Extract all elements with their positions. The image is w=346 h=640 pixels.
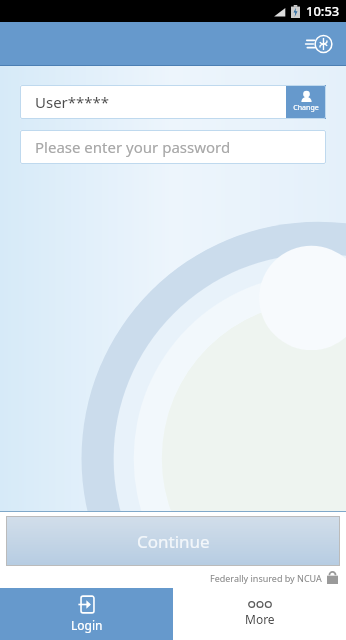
button[interactable]: Change	[286, 85, 326, 119]
staticText: 10:53	[306, 2, 340, 20]
staticText: Change	[293, 103, 319, 113]
button[interactable]: Continue	[6, 516, 340, 566]
button[interactable]: More	[173, 588, 346, 640]
staticText: Login	[71, 617, 103, 633]
staticText: Federally insured by NCUA	[210, 572, 322, 584]
button[interactable]: Login	[0, 588, 173, 640]
staticText: More	[245, 611, 275, 627]
button[interactable]: Please enter your password	[20, 130, 326, 164]
button[interactable]: Pay	[300, 25, 338, 63]
staticText: User*****	[35, 92, 286, 112]
staticText: Continue	[137, 530, 210, 553]
staticText: Please enter your password	[35, 137, 231, 157]
